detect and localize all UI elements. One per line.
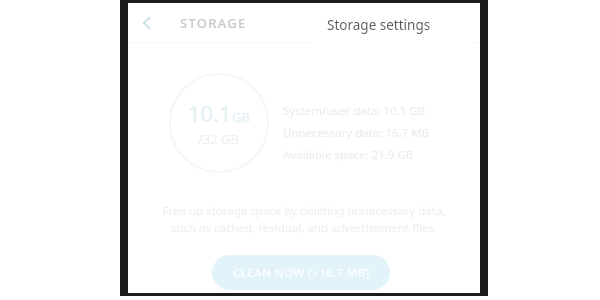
staticText: CLEAN NOW (+16.7 MB) <box>233 265 370 281</box>
staticText: STORAGE <box>180 14 247 32</box>
staticText: Available space: 21.9 GB <box>283 147 414 163</box>
button[interactable]: Storage settings <box>310 3 474 47</box>
staticText: Storage settings <box>327 16 431 34</box>
staticText: System/user data: 10.1 GB <box>283 103 426 119</box>
staticText: Free up storage space by deleting unnece… <box>144 203 464 236</box>
staticText: Unnecessary data: 16.7 MB <box>283 125 430 141</box>
button[interactable]: CLEAN NOW (+16.7 MB) <box>212 255 390 290</box>
staticText: 10.1 <box>188 98 232 128</box>
staticText: /32 GB <box>198 130 240 148</box>
staticText: GB <box>232 108 250 126</box>
button[interactable]: Back <box>128 4 166 42</box>
